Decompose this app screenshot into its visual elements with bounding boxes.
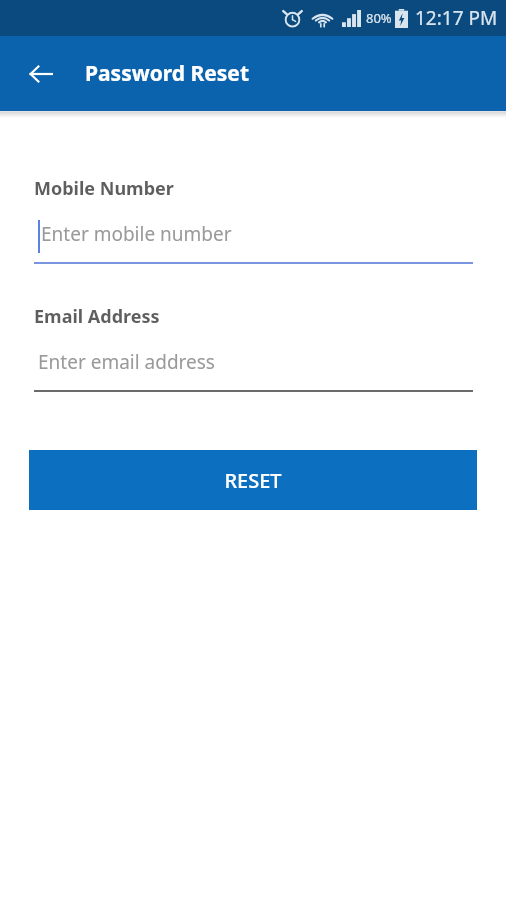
button[interactable]: Enter email address — [34, 344, 473, 392]
staticText: 12:17 PM — [415, 5, 498, 31]
staticText: Email Address — [34, 304, 160, 329]
staticText: Mobile Number — [34, 176, 174, 201]
staticText: Enter email address — [38, 349, 215, 375]
button[interactable]: Enter mobile number — [34, 216, 473, 264]
staticText: Password Reset — [85, 59, 250, 88]
staticText: Enter mobile number — [41, 221, 232, 247]
staticText: 80% — [366, 9, 392, 27]
button[interactable]: RESET — [29, 450, 477, 510]
staticText: RESET — [224, 467, 282, 494]
button[interactable]: Back — [17, 50, 65, 98]
